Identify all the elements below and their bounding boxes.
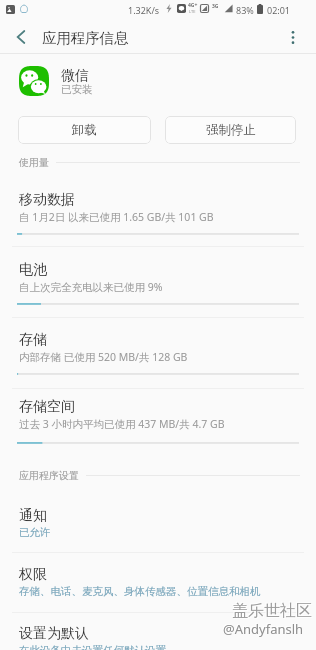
- staticText: 通知: [19, 507, 47, 525]
- staticText: 过去 3 小时内平均已使用 437 MB/共 4.7 GB: [19, 417, 225, 431]
- button[interactable]: [0, 185, 316, 231]
- staticText: @Andyfanslh: [222, 619, 303, 637]
- staticText: 设置为默认: [19, 625, 89, 643]
- button[interactable]: Back: [8, 24, 34, 50]
- button[interactable]: 强制停止: [165, 116, 296, 144]
- staticText: 存储、电话、麦克风、身体传感器、位置信息和相机: [19, 585, 261, 598]
- staticText: 在此设备中未设置任何默认设置: [19, 644, 166, 650]
- staticText: 卸载: [72, 122, 97, 138]
- staticText: 已允许: [19, 526, 51, 539]
- button[interactable]: More options: [282, 23, 304, 51]
- button[interactable]: [0, 255, 316, 301]
- staticText: 3G: [212, 3, 219, 10]
- button[interactable]: [0, 325, 316, 371]
- staticText: 已安装: [61, 83, 93, 96]
- staticText: 盖乐世社区: [231, 600, 311, 620]
- staticText: 盖乐世社区: [232, 601, 312, 621]
- staticText: 自 1月2日 以来已使用 1.65 GB/共 101 GB: [19, 210, 214, 224]
- staticText: 存储空间: [19, 398, 75, 416]
- staticText: 应用程序设置: [19, 469, 79, 482]
- staticText: LTE: [189, 9, 196, 14]
- staticText: 移动数据: [19, 191, 75, 209]
- staticText: 4G+: [188, 2, 198, 9]
- staticText: 1.32K/s: [128, 4, 160, 16]
- staticText: 强制停止: [206, 122, 256, 138]
- button[interactable]: [0, 392, 316, 438]
- staticText: 权限: [19, 566, 47, 584]
- button[interactable]: [0, 499, 316, 545]
- staticText: 02:01: [267, 4, 291, 16]
- staticText: 微信: [61, 67, 89, 85]
- staticText: 83%: [236, 4, 254, 16]
- staticText: 存储: [19, 331, 47, 349]
- button[interactable]: 卸载: [18, 116, 151, 144]
- button[interactable]: [0, 617, 316, 650]
- staticText: 盖乐世社区: [233, 602, 313, 622]
- button[interactable]: [0, 558, 316, 604]
- staticText: 应用程序信息: [42, 29, 129, 47]
- staticText: 内部存储 已使用 520 MB/共 128 GB: [19, 350, 188, 364]
- staticText: 自上次完全充电以来已使用 9%: [19, 280, 163, 294]
- staticText: @Andyfanslh: [223, 620, 304, 638]
- staticText: 电池: [19, 261, 47, 279]
- staticText: 使用量: [19, 156, 49, 169]
- button[interactable]: 微信: [0, 56, 316, 104]
